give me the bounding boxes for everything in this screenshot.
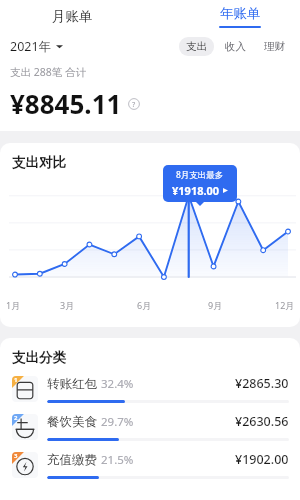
staticText: 转账红包 <box>47 376 97 392</box>
staticText: ¥8845.11 <box>10 86 122 121</box>
button[interactable]: 3 <box>0 451 300 489</box>
button[interactable]: 月账单 <box>40 0 104 33</box>
staticText: 6月 <box>137 299 152 311</box>
staticText: 月账单 <box>52 8 93 25</box>
button[interactable]: 支出 <box>179 37 214 56</box>
button[interactable]: 说明 <box>128 98 140 110</box>
button[interactable]: 1 <box>0 375 300 413</box>
staticText: 21.5% <box>101 452 134 468</box>
staticText: 3月 <box>60 299 75 311</box>
staticText: 3 <box>14 452 18 460</box>
staticText: 12月 <box>275 299 295 311</box>
staticText: 支出分类 <box>12 349 66 366</box>
staticText: 支出 <box>186 40 207 53</box>
staticText: 1 <box>14 376 18 384</box>
button[interactable]: 理财 <box>257 37 292 56</box>
staticText: 2 <box>14 414 18 422</box>
staticText: ¥1902.00 <box>235 451 289 468</box>
staticText: 1月 <box>6 299 21 311</box>
button[interactable]: 8月支出最多 <box>163 165 237 202</box>
staticText: 9月 <box>208 299 223 311</box>
button[interactable]: 2 <box>0 413 300 451</box>
staticText: 支出对比 <box>12 154 66 171</box>
button[interactable]: 年账单 <box>208 0 272 33</box>
button[interactable]: 2021年 <box>10 38 63 55</box>
staticText: 29.7% <box>101 414 134 430</box>
staticText: 2021年 <box>10 38 52 55</box>
staticText: ? <box>132 99 136 109</box>
staticText: 充值缴费 <box>47 452 97 468</box>
staticText: ¥1918.00 <box>172 183 220 198</box>
staticText: 8月支出最多 <box>176 169 224 181</box>
staticText: 收入 <box>225 40 246 53</box>
staticText: 餐饮美食 <box>47 414 97 430</box>
staticText: 支出 288笔 合计 <box>10 65 86 79</box>
staticText: ¥2630.56 <box>235 413 289 430</box>
button[interactable]: 收入 <box>218 37 253 56</box>
staticText: ¥2865.30 <box>235 375 289 392</box>
staticText: 理财 <box>264 40 285 53</box>
staticText: 年账单 <box>220 5 261 22</box>
staticText: 32.4% <box>101 376 134 392</box>
